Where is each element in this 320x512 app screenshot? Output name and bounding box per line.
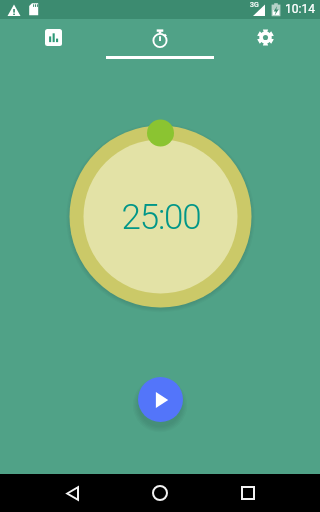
staticText: 3G bbox=[250, 1, 259, 9]
button[interactable]: Timer bbox=[106, 19, 213, 62]
button[interactable]: Start timer bbox=[138, 377, 183, 422]
button[interactable]: Back bbox=[50, 474, 94, 512]
staticText: 10:14 bbox=[285, 2, 315, 16]
button[interactable]: Settings bbox=[213, 19, 320, 62]
button[interactable]: Recent apps bbox=[226, 474, 270, 512]
staticText: 25:00 bbox=[121, 197, 201, 238]
button[interactable]: Home bbox=[138, 474, 182, 512]
button[interactable]: Statistics bbox=[0, 19, 106, 62]
